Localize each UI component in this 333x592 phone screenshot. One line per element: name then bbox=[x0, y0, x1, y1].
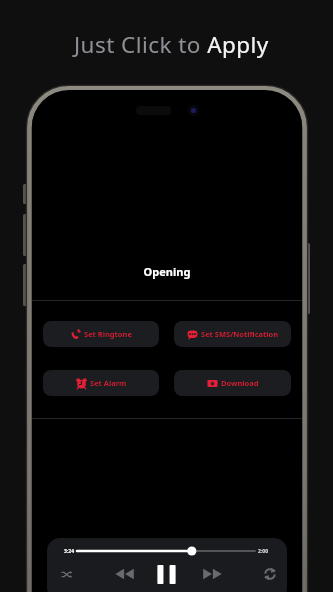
staticText: Set SMS/Notification bbox=[201, 329, 279, 339]
button[interactable]: Shuffle bbox=[53, 561, 79, 587]
button[interactable]: Next bbox=[199, 561, 225, 587]
staticText: Just Click to Apply bbox=[74, 29, 269, 60]
button[interactable]: Set Ringtone bbox=[43, 321, 159, 347]
button[interactable]: Repeat bbox=[257, 561, 283, 587]
button[interactable]: Pause bbox=[153, 561, 179, 587]
button[interactable]: Download bbox=[174, 370, 291, 396]
button[interactable]: Previous bbox=[112, 561, 138, 587]
staticText: Set Alarm bbox=[90, 378, 127, 388]
staticText: Download bbox=[221, 378, 259, 388]
button[interactable]: Set SMS/Notification bbox=[174, 321, 291, 347]
staticText: Opening bbox=[32, 264, 302, 279]
staticText: 2:00 bbox=[258, 548, 268, 555]
staticText: Set Ringtone bbox=[84, 329, 132, 339]
staticText: 3:24 bbox=[64, 548, 74, 555]
button[interactable]: Set Alarm bbox=[43, 370, 159, 396]
